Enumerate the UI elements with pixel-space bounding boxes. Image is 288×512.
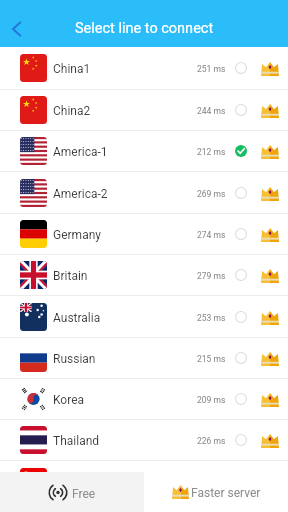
staticText: Select line to connect [75, 20, 214, 37]
staticText: 279 ms [197, 271, 226, 281]
staticText: 274 ms [197, 230, 226, 240]
staticText: Germany [53, 228, 101, 242]
button[interactable]: Free [0, 472, 144, 512]
staticText: Russian [53, 352, 96, 366]
button[interactable]: Britain [0, 255, 288, 296]
button[interactable]: Germany [0, 214, 288, 255]
staticText: Korea [53, 393, 85, 407]
staticText: 215 ms [197, 354, 226, 364]
staticText: 253 ms [197, 313, 226, 323]
button[interactable]: Singapore [0, 461, 288, 472]
staticText: 212 ms [197, 147, 226, 157]
staticText: America-1 [53, 145, 108, 159]
button[interactable]: Thailand [0, 420, 288, 461]
staticText: Thailand [53, 434, 100, 448]
staticText: America-2 [53, 187, 108, 201]
staticText: 269 ms [197, 189, 226, 199]
button[interactable]: Faster server [144, 472, 288, 512]
button[interactable]: Back [0, 9, 32, 49]
staticText: China1 [53, 62, 91, 76]
staticText: Australia [53, 311, 101, 325]
staticText: Britain [53, 269, 88, 283]
staticText: 209 ms [197, 395, 226, 405]
staticText: 226 ms [197, 436, 226, 446]
staticText: China2 [53, 104, 91, 118]
button[interactable]: Australia [0, 296, 288, 338]
button[interactable]: America-2 [0, 172, 288, 214]
button[interactable]: China2 [0, 90, 288, 131]
staticText: 251 ms [197, 64, 226, 74]
button[interactable]: America-1 [0, 131, 288, 172]
staticText: Faster server [191, 486, 261, 500]
button[interactable]: Russian [0, 338, 288, 379]
staticText: Free [72, 487, 96, 501]
button[interactable]: Korea [0, 379, 288, 420]
button[interactable]: China1 [0, 47, 288, 90]
staticText: 244 ms [197, 106, 226, 116]
